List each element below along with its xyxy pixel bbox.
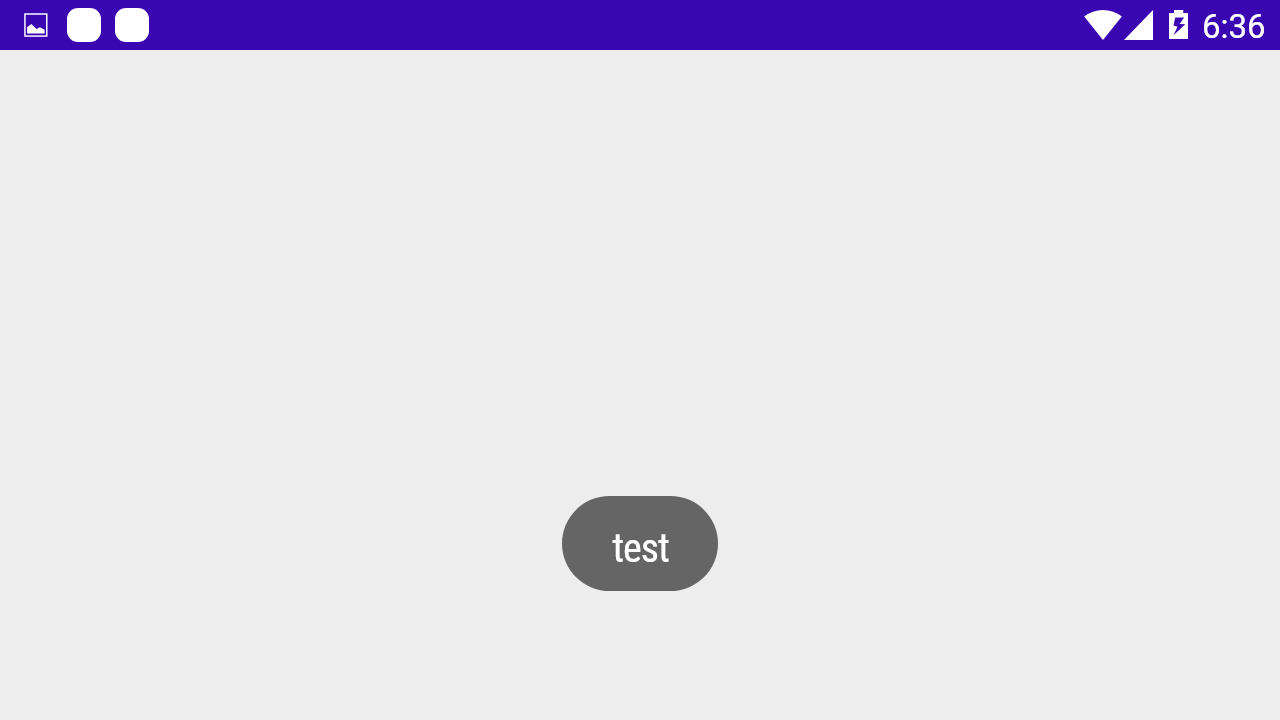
- other: Wi-Fi: [1085, 10, 1121, 40]
- other: App notification: [108, 1, 156, 49]
- other: Mobile signal: [1124, 10, 1153, 40]
- other: Screenshot captured: [12, 1, 60, 49]
- staticText: test: [612, 525, 669, 572]
- button[interactable]: test: [562, 496, 718, 591]
- other: Battery charging: [1169, 10, 1188, 39]
- other: App notification: [60, 1, 108, 49]
- staticText: 6:36: [1202, 7, 1266, 46]
